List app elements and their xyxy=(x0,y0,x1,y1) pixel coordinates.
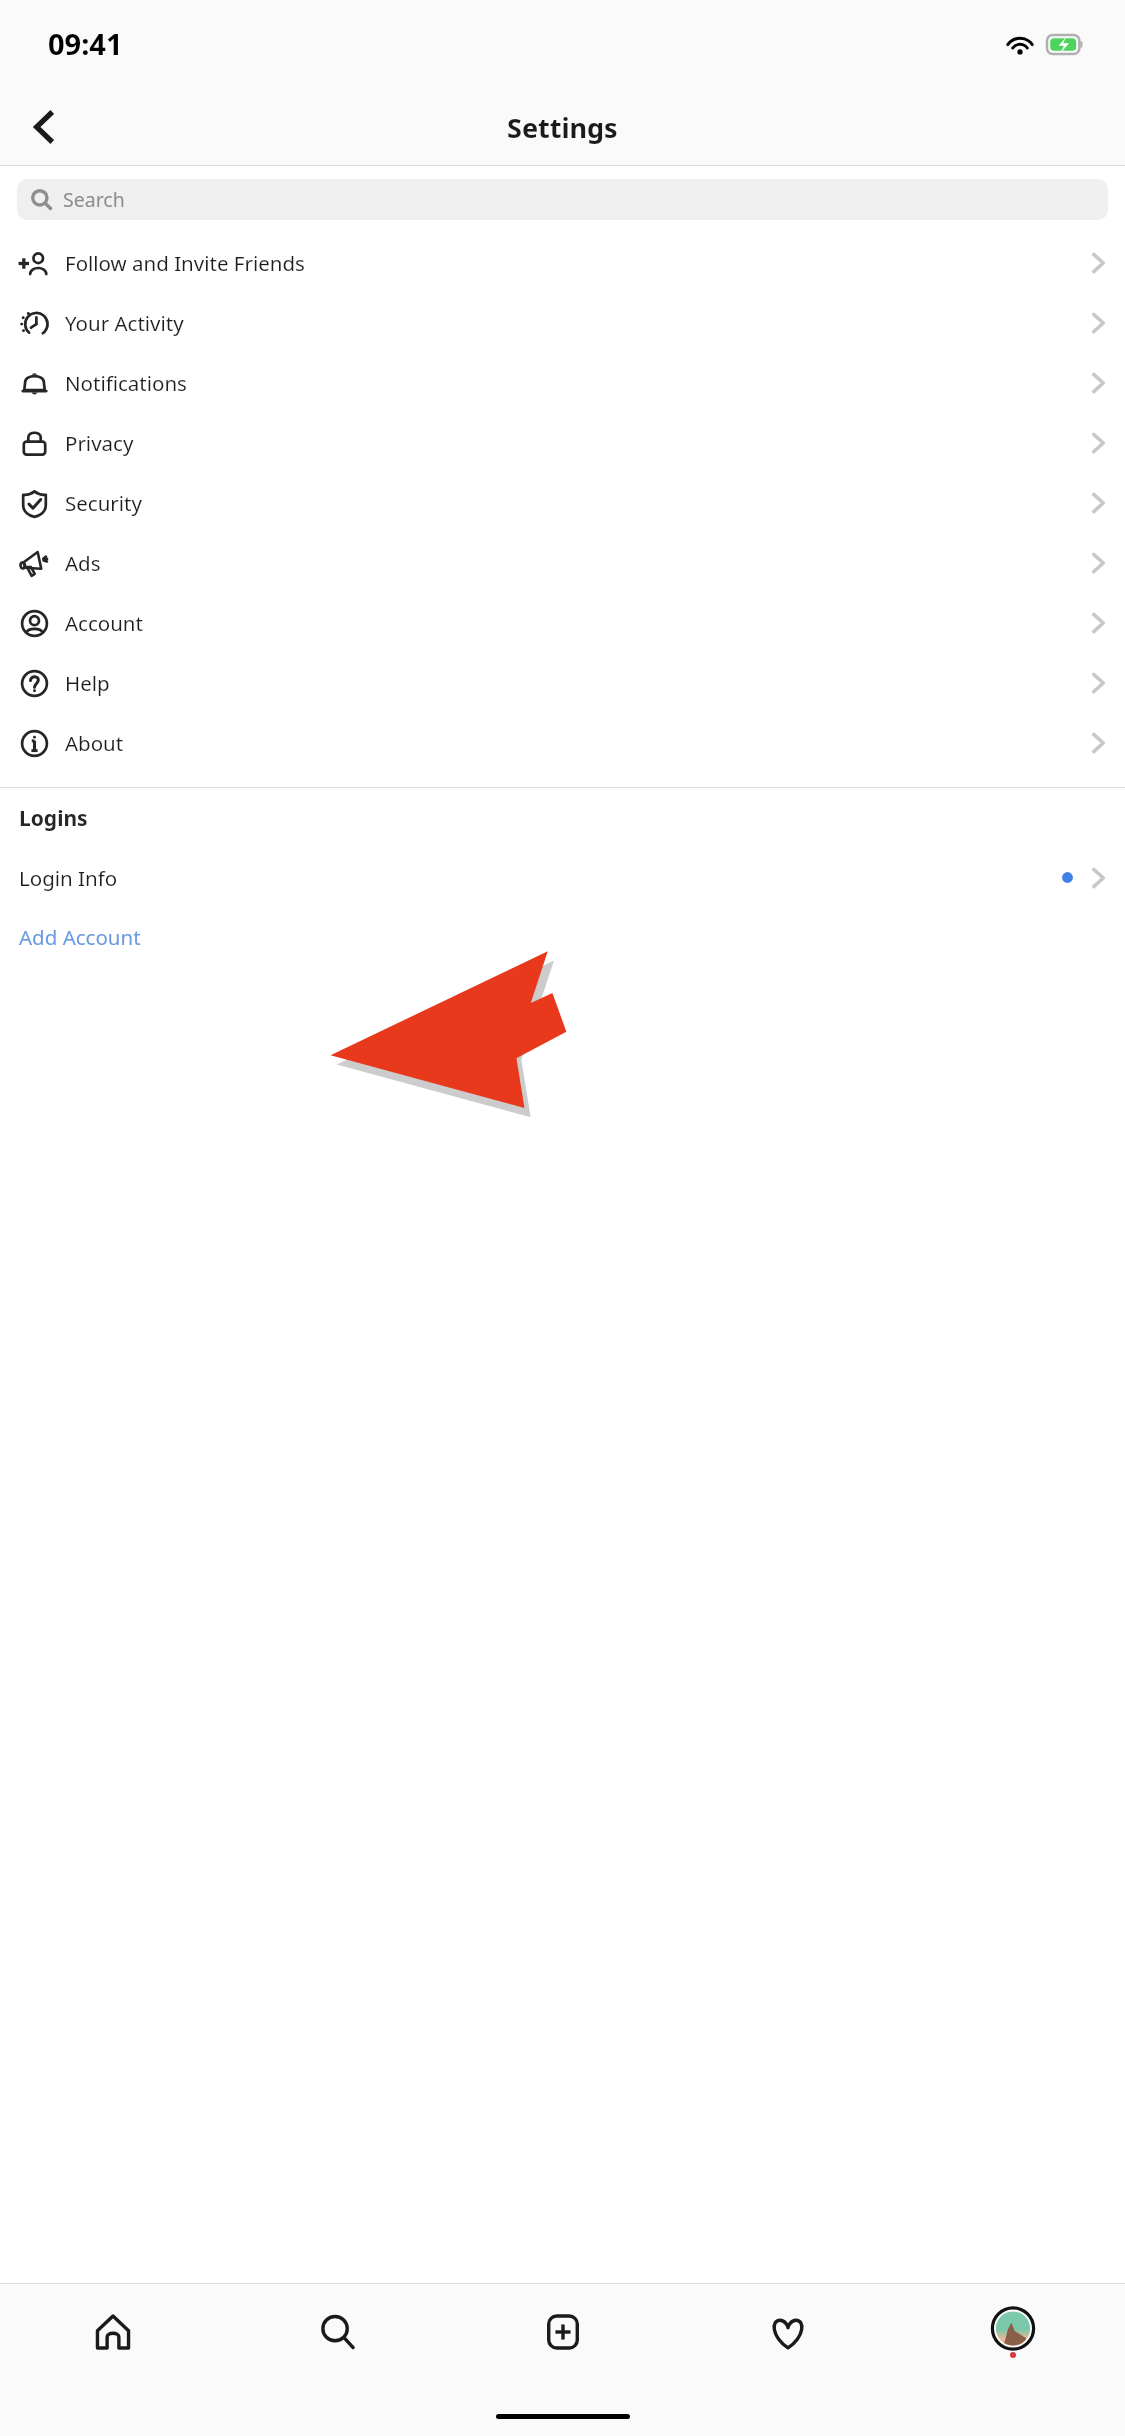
staticText: Account xyxy=(65,609,1091,637)
button[interactable]: Your Activity xyxy=(0,293,1125,353)
staticText: Ads xyxy=(65,549,1091,577)
staticText: About xyxy=(65,729,1091,757)
button[interactable]: Ads xyxy=(0,533,1125,593)
staticText: Settings xyxy=(507,109,618,146)
button[interactable]: About xyxy=(0,713,1125,773)
button[interactable]: Search xyxy=(17,179,1108,220)
button[interactable]: Add Account xyxy=(0,907,1125,966)
staticText: Notifications xyxy=(65,369,1091,397)
button[interactable]: Account xyxy=(0,593,1125,653)
button[interactable]: Profile xyxy=(900,2284,1125,2380)
button[interactable]: Privacy xyxy=(0,413,1125,473)
button[interactable]: Follow and Invite Friends xyxy=(0,233,1125,293)
staticText: 09:41 xyxy=(48,24,123,63)
staticText: Help xyxy=(65,669,1091,697)
staticText: Follow and Invite Friends xyxy=(65,249,1091,277)
button[interactable]: Security xyxy=(0,473,1125,533)
button[interactable]: Notifications xyxy=(0,353,1125,413)
button[interactable]: Create xyxy=(450,2284,675,2380)
button[interactable]: Activity xyxy=(675,2284,900,2380)
staticText: Login Info xyxy=(19,864,1060,892)
staticText: Privacy xyxy=(65,429,1091,457)
staticText: Add Account xyxy=(19,923,141,951)
button[interactable]: Login Info xyxy=(0,848,1125,907)
staticText: Search xyxy=(63,186,125,213)
button[interactable]: Back xyxy=(14,96,76,158)
button[interactable]: Home xyxy=(0,2284,225,2380)
staticText: Security xyxy=(65,489,1091,517)
button[interactable]: Help xyxy=(0,653,1125,713)
staticText: Logins xyxy=(19,804,88,833)
button[interactable]: Search xyxy=(225,2284,450,2380)
staticText: Your Activity xyxy=(65,309,1091,337)
